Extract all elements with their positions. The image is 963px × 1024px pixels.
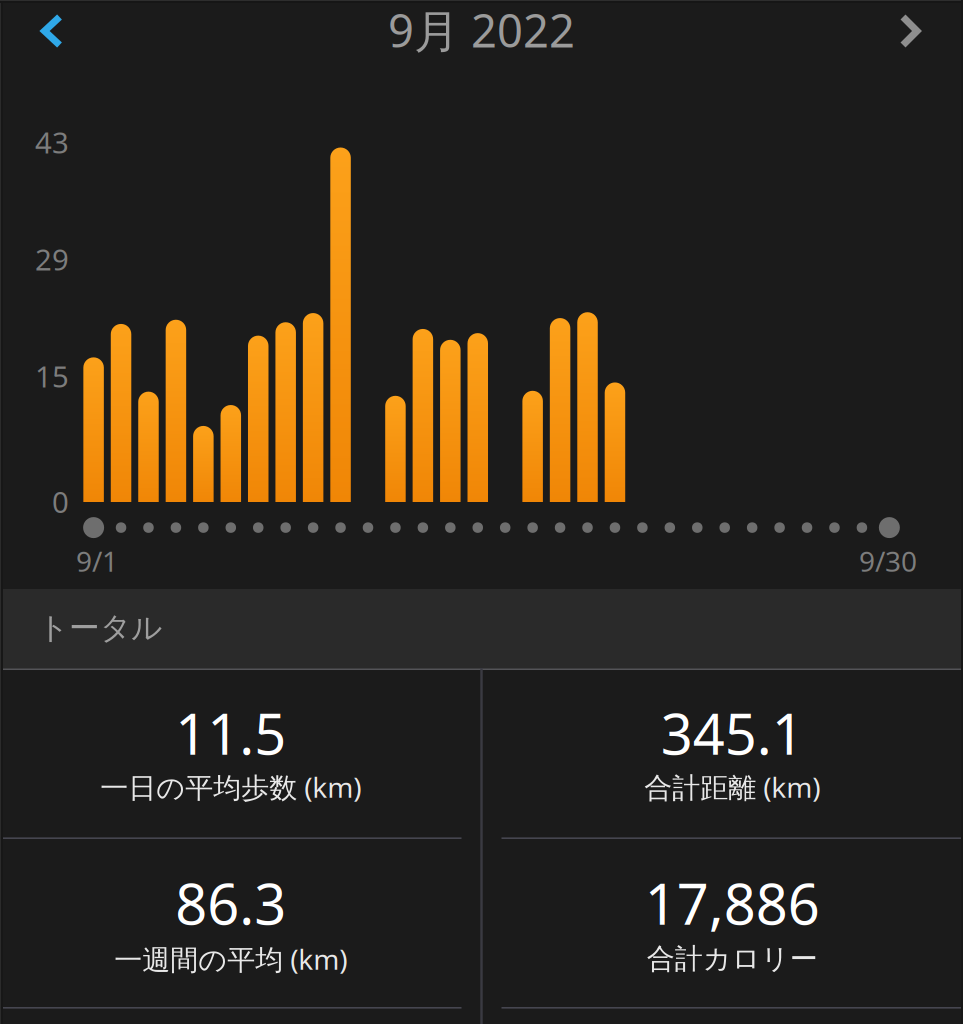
staticText: 11.5 xyxy=(175,696,286,770)
staticText: 一日の平均歩数 (km) xyxy=(100,768,361,806)
staticText: 合計距離 (km) xyxy=(644,768,820,806)
staticText: 合計カロリー xyxy=(647,942,818,976)
staticText: 17,886 xyxy=(645,866,820,940)
button[interactable]: 17,886 xyxy=(481,838,963,1008)
staticText: 15 xyxy=(35,357,69,396)
staticText: 29 xyxy=(35,240,69,279)
staticText: 345.1 xyxy=(661,696,804,770)
button[interactable]: 86.3 xyxy=(0,838,481,1008)
staticText: 9/30 xyxy=(859,542,917,580)
button[interactable]: Next month xyxy=(868,0,952,64)
staticText: 43 xyxy=(35,122,69,161)
button[interactable]: 345.1 xyxy=(481,668,963,838)
staticText: 一週間の平均 (km) xyxy=(114,940,347,978)
button[interactable]: 11.5 xyxy=(0,668,481,838)
staticText: 9月 2022 xyxy=(388,0,575,60)
staticText: 0 xyxy=(52,482,69,521)
staticText: 86.3 xyxy=(175,866,286,940)
staticText: 9/1 xyxy=(76,542,118,580)
button[interactable]: Previous month xyxy=(10,0,94,64)
staticText: トータル xyxy=(38,609,162,647)
